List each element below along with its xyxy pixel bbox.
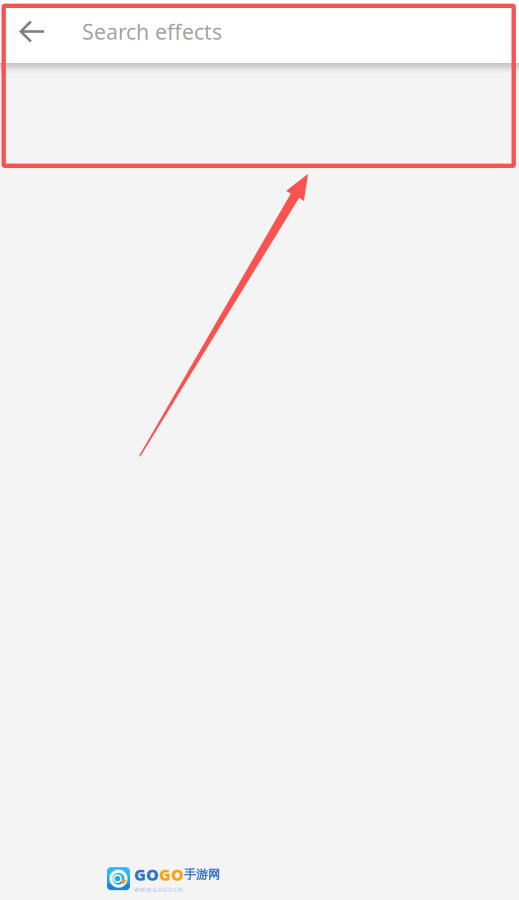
- staticText: 手游网: [184, 867, 220, 882]
- button[interactable]: Search effects: [82, 0, 519, 63]
- staticText: Search effects: [82, 17, 222, 46]
- staticText: W W W. G O G O. C N: [134, 886, 182, 893]
- staticText: GO: [159, 864, 184, 885]
- button[interactable]: Back: [0, 0, 70, 63]
- staticText: GO: [134, 864, 159, 885]
